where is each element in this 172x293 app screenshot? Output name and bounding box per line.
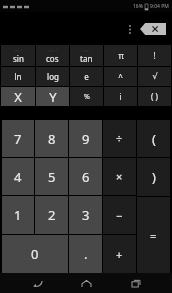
- button[interactable]: −: [103, 196, 136, 234]
- staticText: −: [116, 208, 123, 223]
- button[interactable]: 0: [2, 235, 68, 273]
- button[interactable]: 9: [69, 120, 102, 157]
- staticText: 3: [82, 206, 90, 224]
- staticText: 9: [82, 130, 90, 148]
- staticText: 6: [82, 168, 90, 186]
- staticText: Y: [49, 88, 57, 106]
- button[interactable]: sin-1: [1, 45, 35, 66]
- staticText: ÷: [116, 131, 123, 146]
- staticText: π: [118, 50, 124, 61]
- staticText: e: [84, 71, 89, 82]
- button[interactable]: ): [137, 158, 170, 196]
- button[interactable]: 4: [2, 158, 34, 195]
- button[interactable]: ln: [1, 67, 35, 86]
- staticText: √: [152, 72, 158, 81]
- button[interactable]: 5: [35, 158, 68, 195]
- button[interactable]: i: [104, 87, 137, 106]
- button[interactable]: 7: [2, 120, 34, 157]
- button[interactable]: Recent apps: [123, 273, 149, 293]
- button[interactable]: Back: [24, 273, 50, 293]
- staticText: i: [119, 91, 122, 102]
- button[interactable]: 2: [35, 196, 68, 234]
- button[interactable]: %: [70, 87, 103, 106]
- staticText: 2: [48, 206, 56, 224]
- button[interactable]: ÷: [103, 120, 136, 157]
- staticText: ^: [118, 71, 123, 82]
- button[interactable]: log: [36, 67, 69, 86]
- staticText: (: [152, 130, 156, 148]
- button[interactable]: +: [103, 235, 136, 273]
- staticText: 1: [14, 206, 22, 224]
- staticText: 5: [48, 168, 56, 186]
- staticText: 0: [31, 245, 39, 263]
- button[interactable]: Delete: [140, 23, 166, 35]
- staticText: sin: [13, 53, 24, 64]
- staticText: ln: [14, 71, 22, 82]
- staticText: ×: [116, 169, 123, 184]
- button[interactable]: =: [137, 197, 170, 273]
- staticText: 8: [48, 130, 56, 148]
- staticText: .: [84, 245, 88, 263]
- button[interactable]: ×: [103, 158, 136, 195]
- button[interactable]: ( ): [138, 87, 171, 106]
- staticText: tan-1: [82, 48, 92, 53]
- staticText: !: [153, 50, 156, 61]
- button[interactable]: √: [138, 67, 171, 86]
- staticText: X: [14, 88, 22, 106]
- button[interactable]: tan-1: [70, 45, 103, 66]
- button[interactable]: π: [104, 45, 137, 66]
- staticText: tan: [80, 53, 93, 64]
- button[interactable]: Y: [36, 87, 69, 106]
- staticText: =: [150, 228, 157, 243]
- button[interactable]: 6: [69, 158, 102, 195]
- button[interactable]: e: [70, 67, 103, 86]
- button[interactable]: ^: [104, 67, 137, 86]
- button[interactable]: 8: [35, 120, 68, 157]
- staticText: %: [84, 92, 90, 102]
- button[interactable]: Home: [73, 273, 99, 293]
- button[interactable]: 3: [69, 196, 102, 234]
- button[interactable]: .: [69, 235, 102, 273]
- staticText: 9:04 PM: [150, 3, 169, 10]
- staticText: 7: [14, 130, 22, 148]
- button[interactable]: cos-1: [36, 45, 69, 66]
- button[interactable]: !: [138, 45, 171, 66]
- staticText: 16%: [133, 3, 143, 10]
- button[interactable]: X: [1, 87, 35, 106]
- staticText: cos-1: [48, 48, 58, 53]
- staticText: +: [116, 247, 123, 262]
- button[interactable]: More options: [124, 19, 136, 39]
- staticText: ): [152, 168, 156, 186]
- button[interactable]: (: [137, 120, 170, 157]
- staticText: ( ): [151, 91, 158, 102]
- button[interactable]: 1: [2, 196, 34, 234]
- staticText: cos: [46, 53, 59, 64]
- staticText: log: [47, 71, 59, 82]
- staticText: 4: [14, 168, 22, 186]
